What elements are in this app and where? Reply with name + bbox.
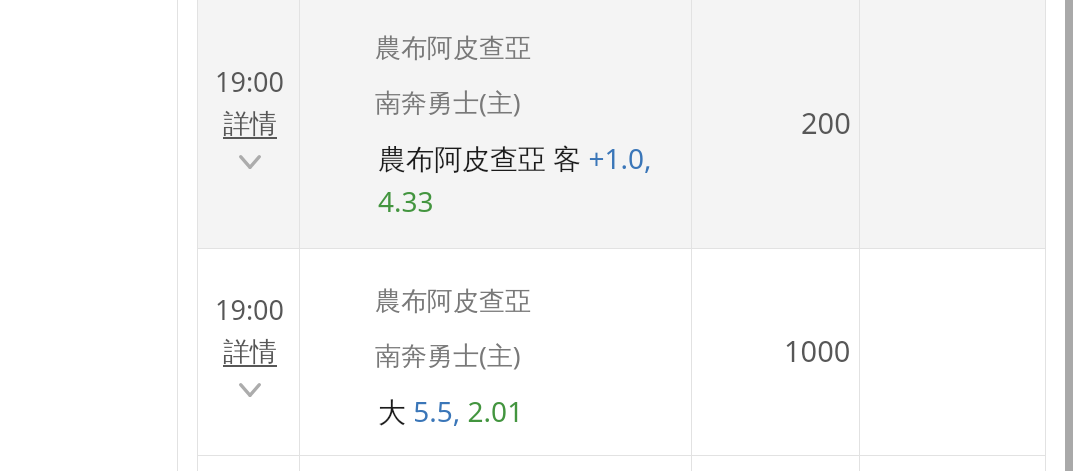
staticText: 19:00 — [215, 63, 285, 100]
button[interactable]: 19:00 — [197, 249, 1046, 455]
button[interactable]: 19:00 — [197, 0, 1046, 248]
button[interactable]: 詳情 (details) — [223, 335, 277, 371]
staticText: 南奔勇士(主) — [375, 84, 521, 120]
staticText: 農布阿皮查亞 客 +1.0, — [378, 139, 652, 177]
staticText: 詳情 — [223, 335, 277, 369]
staticText: 大 5.5, 2.01 — [378, 392, 524, 430]
staticText: 19:00 — [215, 291, 285, 328]
button[interactable]: Expand bet details — [237, 381, 263, 399]
staticText: 詳情 — [223, 107, 277, 141]
staticText: 農布阿皮查亞 — [375, 285, 531, 318]
staticText: 4.33 — [378, 182, 434, 220]
button[interactable]: 詳情 (details) — [223, 107, 277, 143]
button[interactable]: Expand bet details — [237, 153, 263, 171]
staticText: 1000 — [784, 331, 851, 370]
staticText: 南奔勇士(主) — [375, 337, 521, 373]
staticText: 農布阿皮查亞 — [375, 32, 531, 65]
staticText: 200 — [801, 103, 851, 142]
